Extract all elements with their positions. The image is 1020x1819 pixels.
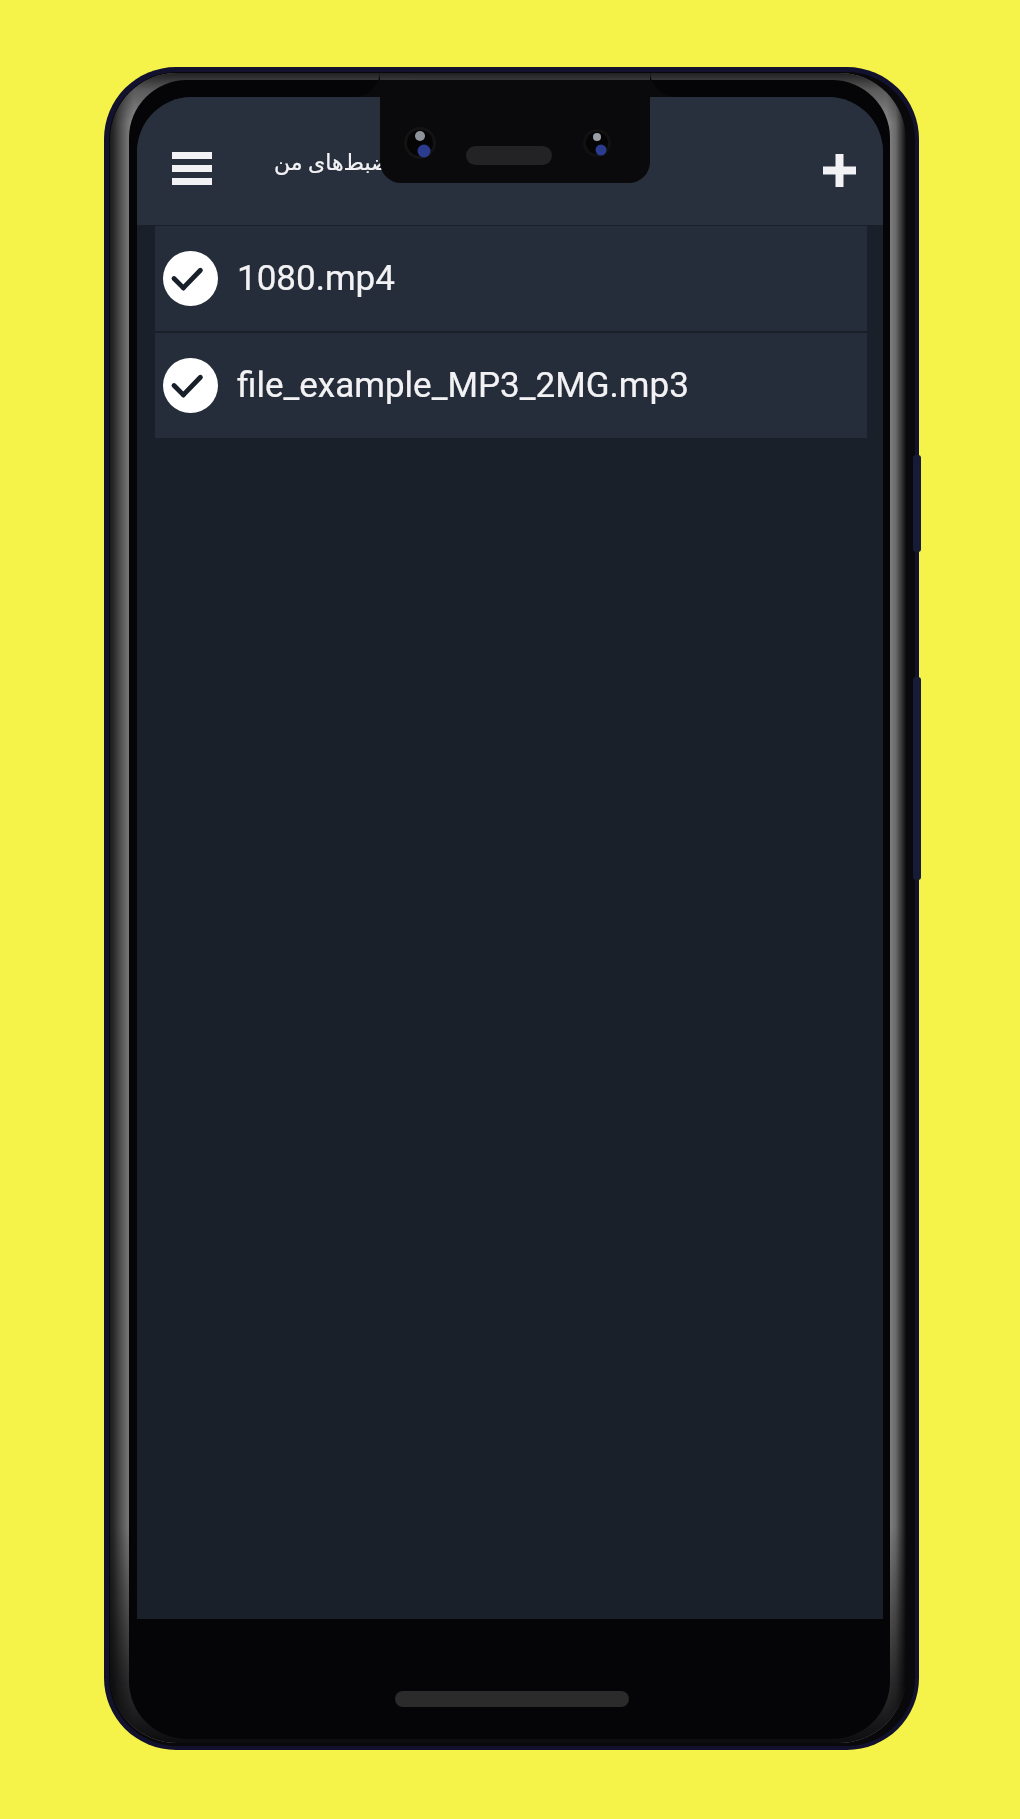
button[interactable]: Add recording — [810, 141, 868, 199]
staticText: ضبط‌های من — [274, 150, 390, 176]
button[interactable]: file_example_MP3_2MG.mp3 — [155, 333, 867, 438]
button[interactable]: Open navigation menu — [158, 138, 225, 198]
staticText: 1080.mp4 — [237, 258, 395, 299]
button[interactable]: 1080.mp4 — [155, 226, 867, 331]
staticText: file_example_MP3_2MG.mp3 — [237, 365, 689, 406]
